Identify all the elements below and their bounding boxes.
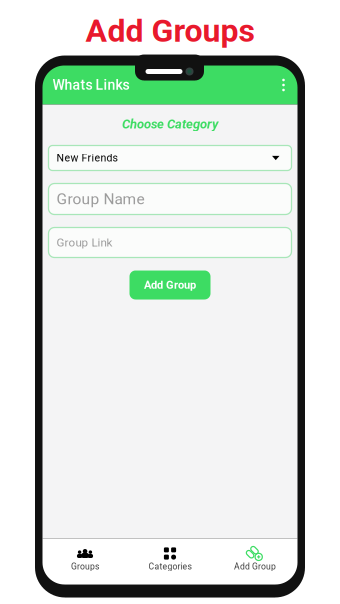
staticText: Groups (71, 561, 99, 572)
button[interactable]: More options (272, 65, 294, 104)
staticText: Group Name (56, 190, 144, 208)
button[interactable]: Group Link (48, 227, 291, 257)
staticText: Add Group (234, 561, 276, 572)
button[interactable]: New Friends (48, 145, 291, 170)
staticText: New Friends (56, 152, 117, 164)
staticText: Categories (148, 561, 191, 572)
staticText: Group Link (56, 236, 112, 249)
staticText: Whats Links (52, 77, 129, 93)
staticText: Choose Category (122, 116, 218, 132)
staticText: Add Groups (85, 12, 254, 49)
button[interactable]: Groups (42, 538, 127, 584)
button[interactable]: Categories (127, 538, 212, 584)
button[interactable]: Add Group (212, 538, 297, 584)
button[interactable]: Add Group (129, 270, 210, 299)
button[interactable]: Group Name (48, 183, 291, 214)
staticText: Add Group (144, 278, 196, 291)
